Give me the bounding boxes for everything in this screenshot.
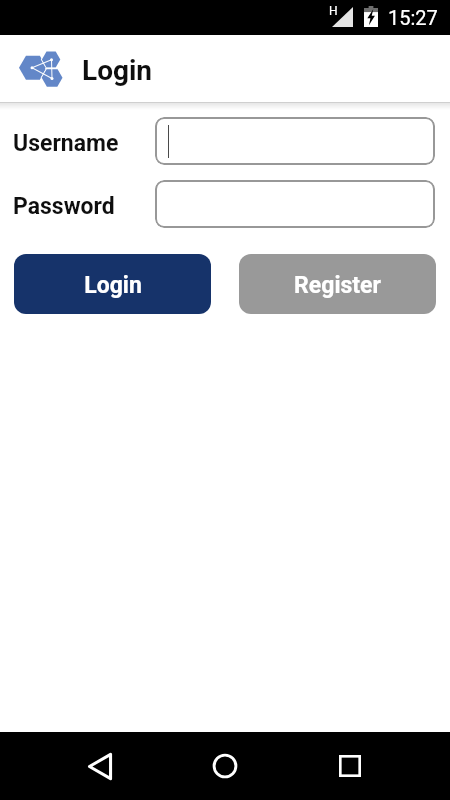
staticText: H xyxy=(329,4,338,18)
button[interactable]: Home xyxy=(183,732,267,800)
button[interactable]: Register xyxy=(239,254,436,314)
button[interactable]: Login xyxy=(14,254,211,314)
staticText: Login xyxy=(82,54,153,87)
staticText: Username xyxy=(13,130,119,157)
staticText: Login xyxy=(84,272,142,299)
staticText: 15:27 xyxy=(388,6,438,29)
button[interactable] xyxy=(155,180,435,228)
button[interactable] xyxy=(155,117,435,165)
button[interactable]: Back xyxy=(58,732,142,800)
button[interactable]: Recents xyxy=(308,732,392,800)
staticText: Register xyxy=(294,272,381,299)
staticText: Password xyxy=(13,193,115,220)
